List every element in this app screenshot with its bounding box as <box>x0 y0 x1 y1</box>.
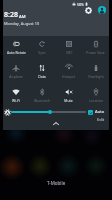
staticText: Airplane <box>9 74 23 79</box>
button[interactable]: Hotspot <box>55 60 82 84</box>
button[interactable]: Location <box>82 84 109 108</box>
staticText: Location <box>89 98 103 103</box>
button[interactable]: Bluetooth <box>29 84 55 108</box>
staticText: NFC <box>66 50 73 55</box>
staticText: Bluetooth <box>34 98 50 103</box>
staticText: Auto <box>95 109 105 115</box>
staticText: Data <box>38 74 46 79</box>
button[interactable]: NFC <box>55 36 82 60</box>
staticText: 8:28 <box>4 10 18 20</box>
button[interactable]: Auto <box>88 109 105 115</box>
button[interactable]: Settings <box>83 5 94 16</box>
staticText: Flashlight <box>88 74 104 79</box>
button[interactable]: Brightness <box>11 111 86 113</box>
button[interactable]: Mute <box>55 84 82 108</box>
staticText: Monday, August 10 <box>4 21 40 26</box>
button[interactable]: Flashlight <box>82 60 109 84</box>
button[interactable]: User account <box>97 5 107 15</box>
button[interactable]: Auto Rotate <box>3 36 29 60</box>
staticText: T-Mobile <box>47 180 66 186</box>
button[interactable]: Edit <box>97 117 105 122</box>
button[interactable]: Wi-Fi <box>3 84 29 108</box>
staticText: Auto Rotate <box>7 50 26 55</box>
button[interactable]: Data <box>29 60 55 84</box>
staticText: Hotspot <box>62 74 75 79</box>
staticText: Sync <box>38 50 46 55</box>
button[interactable]: Power Save <box>82 36 109 60</box>
button[interactable]: Sync <box>29 36 55 60</box>
staticText: AM <box>19 14 26 20</box>
staticText: 58% <box>77 2 84 7</box>
staticText: Power Save <box>86 50 105 55</box>
staticText: Wi-Fi <box>12 98 20 103</box>
staticText: Mute <box>64 98 73 103</box>
button[interactable]: Airplane <box>3 60 29 84</box>
